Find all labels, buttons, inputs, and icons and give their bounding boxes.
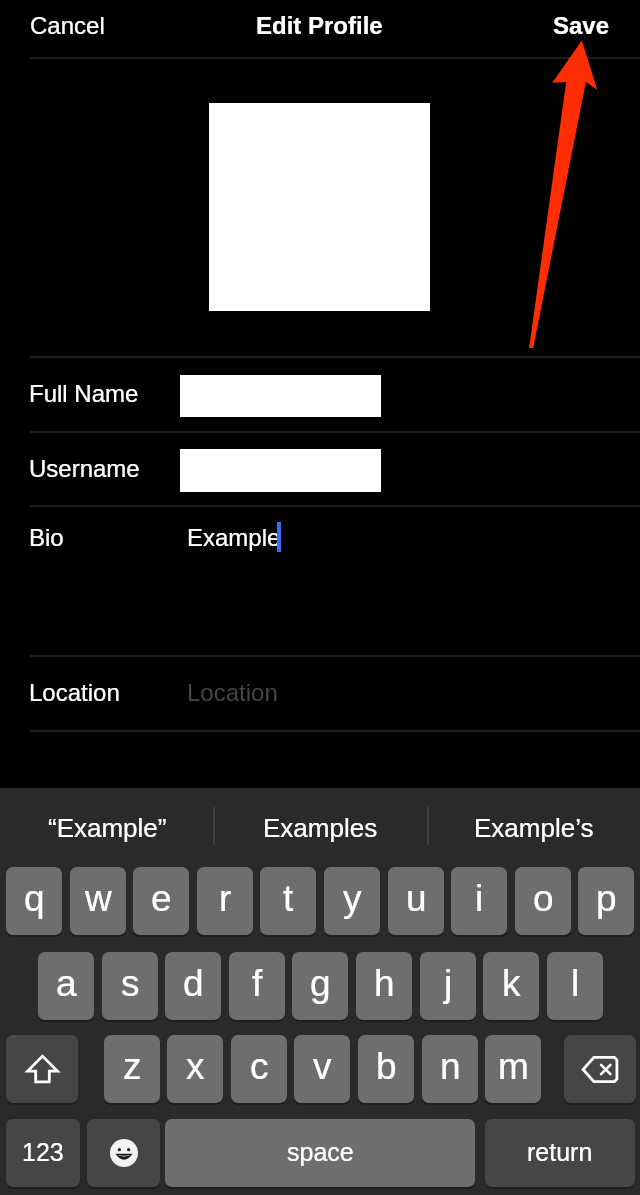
button[interactable]: o (515, 867, 571, 935)
button[interactable]: Emoji keyboard (87, 1119, 160, 1187)
staticText: Cancel (30, 12, 105, 39)
staticText: f (252, 963, 263, 1004)
staticText: k (502, 963, 521, 1004)
staticText: s (121, 963, 140, 1004)
button[interactable]: return (485, 1119, 635, 1187)
button[interactable]: z (104, 1035, 160, 1103)
button[interactable]: r (197, 867, 253, 935)
staticText: n (440, 1046, 461, 1087)
staticText: x (186, 1046, 205, 1087)
button[interactable]: l (547, 952, 603, 1020)
staticText: o (533, 878, 554, 919)
button[interactable] (0, 432, 640, 505)
button[interactable]: e (133, 867, 189, 935)
staticText: Examples (263, 813, 378, 842)
staticText: i (475, 878, 484, 919)
button[interactable] (0, 506, 640, 655)
staticText: w (85, 878, 112, 919)
button[interactable]: y (324, 867, 380, 935)
button[interactable]: j (420, 952, 476, 1020)
button[interactable]: u (388, 867, 444, 935)
button[interactable]: Save (539, 2, 624, 49)
button[interactable]: Backspace (564, 1035, 636, 1103)
staticText: Example’s (474, 813, 594, 842)
staticText: Location (29, 679, 120, 706)
button[interactable]: w (70, 867, 126, 935)
button[interactable]: f (229, 952, 285, 1020)
button[interactable]: k (483, 952, 539, 1020)
button[interactable]: m (485, 1035, 541, 1103)
button[interactable]: p (578, 867, 634, 935)
staticText: Username (29, 455, 140, 482)
staticText: “Example” (48, 813, 167, 842)
button[interactable]: Edit Profile (256, 12, 383, 39)
staticText: t (283, 878, 294, 919)
button[interactable]: 123 (6, 1119, 80, 1187)
button[interactable]: Cancel (16, 2, 119, 49)
button[interactable]: g (292, 952, 348, 1020)
staticText: space (287, 1138, 354, 1166)
staticText: g (310, 963, 331, 1004)
button[interactable]: space (165, 1119, 475, 1187)
staticText: Save (553, 12, 610, 39)
staticText: u (406, 878, 427, 919)
button[interactable] (0, 357, 640, 431)
staticText: d (183, 963, 204, 1004)
staticText: j (444, 963, 453, 1004)
staticText: m (498, 1046, 529, 1087)
button[interactable]: Examples (214, 788, 427, 867)
button[interactable]: d (165, 952, 221, 1020)
staticText: Full Name (29, 380, 139, 407)
button[interactable] (0, 656, 640, 730)
staticText: y (343, 878, 362, 919)
button[interactable]: i (451, 867, 507, 935)
staticText: z (123, 1046, 142, 1087)
button[interactable]: Example’s (427, 788, 640, 867)
button[interactable]: n (422, 1035, 478, 1103)
staticText: p (596, 878, 617, 919)
staticText: Bio (29, 524, 64, 551)
staticText: b (376, 1046, 397, 1087)
staticText: h (374, 963, 395, 1004)
button[interactable]: b (358, 1035, 414, 1103)
staticText: Location (187, 679, 278, 706)
staticText: q (24, 878, 45, 919)
button[interactable]: v (294, 1035, 350, 1103)
staticText: return (527, 1138, 593, 1166)
staticText: r (219, 878, 232, 919)
button[interactable]: t (260, 867, 316, 935)
staticText: 123 (22, 1138, 64, 1166)
button[interactable]: x (167, 1035, 223, 1103)
staticText: a (56, 963, 77, 1004)
staticText: Edit Profile (256, 12, 383, 39)
staticText: l (571, 963, 580, 1004)
staticText: c (250, 1046, 269, 1087)
button[interactable]: s (102, 952, 158, 1020)
staticText: e (151, 878, 172, 919)
button[interactable]: “Example” (0, 788, 214, 867)
button[interactable]: h (356, 952, 412, 1020)
button[interactable]: c (231, 1035, 287, 1103)
staticText: Example (187, 524, 281, 551)
button[interactable]: q (6, 867, 62, 935)
button[interactable]: a (38, 952, 94, 1020)
staticText: v (313, 1046, 332, 1087)
button[interactable]: Shift (6, 1035, 78, 1103)
